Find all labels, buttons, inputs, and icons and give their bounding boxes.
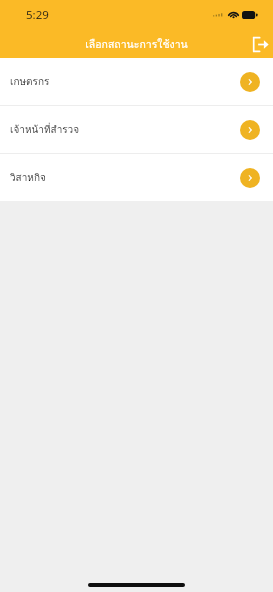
button[interactable]: Log out bbox=[247, 31, 273, 57]
staticText: วิสาหกิจ bbox=[10, 170, 46, 186]
button[interactable]: เจ้าหน้าที่สำรวจ bbox=[0, 106, 273, 153]
button[interactable]: วิสาหกิจ bbox=[0, 154, 273, 201]
staticText: 5:29 bbox=[26, 7, 49, 23]
staticText: เลือกสถานะการใช้งาน bbox=[85, 36, 188, 53]
staticText: เกษตรกร bbox=[10, 74, 50, 90]
button[interactable]: เกษตรกร bbox=[0, 58, 273, 105]
staticText: เจ้าหน้าที่สำรวจ bbox=[10, 122, 80, 138]
